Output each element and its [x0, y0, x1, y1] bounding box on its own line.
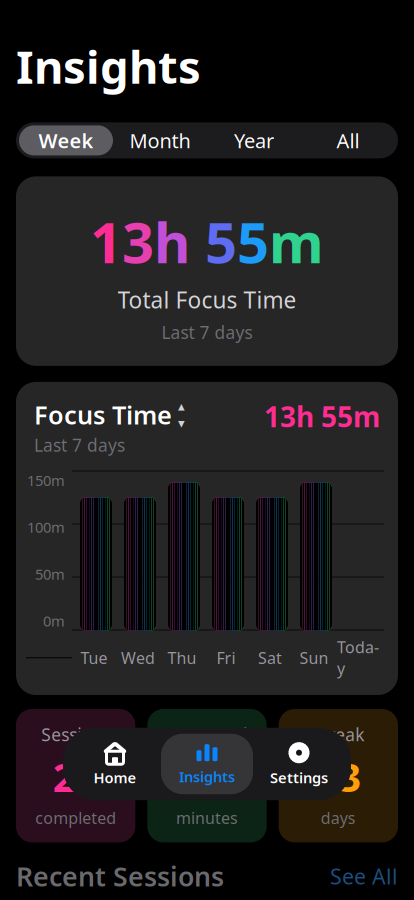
staticText: All	[336, 127, 359, 154]
staticText: Wed	[121, 647, 155, 668]
button[interactable]: Streak	[279, 709, 398, 842]
staticText: Week	[38, 127, 93, 154]
staticText: 3	[122, 204, 154, 279]
staticText: Month	[129, 127, 190, 154]
staticText: ▴	[178, 399, 185, 414]
staticText: 50m	[35, 564, 65, 584]
staticText: 32	[184, 750, 230, 803]
staticText: Fri	[216, 647, 235, 668]
staticText: minutes	[176, 807, 238, 828]
button[interactable]: Avg Length	[147, 709, 267, 842]
button[interactable]: Insights	[161, 734, 253, 794]
staticText: Insights	[179, 767, 235, 786]
button[interactable]: Month	[113, 125, 207, 155]
staticText: 0m	[43, 611, 65, 630]
staticText: 26	[53, 750, 99, 803]
staticText: Tue	[80, 647, 107, 668]
staticText: See All	[330, 862, 398, 890]
button[interactable]: Home	[69, 733, 161, 795]
staticText: 1	[90, 204, 122, 279]
staticText: 100m	[27, 517, 65, 537]
button[interactable]: See All	[330, 862, 398, 890]
staticText: days	[321, 807, 356, 828]
staticText: Last 7 days	[34, 433, 125, 456]
staticText: Sat	[258, 647, 282, 668]
staticText: Year	[234, 127, 274, 154]
staticText: Thu	[167, 647, 196, 668]
staticText: Sessions	[41, 723, 110, 746]
staticText: Recent Sessions	[16, 858, 224, 894]
button[interactable]: Year	[207, 125, 301, 155]
button[interactable]: Week	[19, 125, 113, 155]
staticText: Focus Time	[34, 398, 172, 431]
staticText: completed	[35, 807, 116, 828]
staticText: ▾	[178, 416, 185, 431]
staticText: Streak	[312, 723, 364, 746]
staticText: m	[269, 204, 324, 279]
staticText: Sun	[299, 647, 328, 668]
staticText: Insights	[16, 36, 201, 96]
staticText: Home	[93, 768, 136, 787]
staticText: Avg Length	[160, 723, 254, 746]
staticText: 5	[205, 204, 237, 279]
staticText: Today	[337, 636, 379, 679]
button[interactable]: Sessions	[16, 709, 135, 842]
staticText: 5	[237, 204, 269, 279]
staticText: Last 7 days	[161, 321, 252, 344]
staticText: Settings	[270, 768, 328, 787]
staticText: 13h 55m	[264, 398, 380, 435]
staticText: Total Focus Time	[117, 285, 296, 315]
staticText: h	[154, 204, 190, 279]
staticText: 23	[315, 750, 361, 803]
button[interactable]: Settings	[253, 733, 345, 795]
staticText: 150m	[27, 470, 65, 490]
button[interactable]: All	[301, 125, 395, 155]
